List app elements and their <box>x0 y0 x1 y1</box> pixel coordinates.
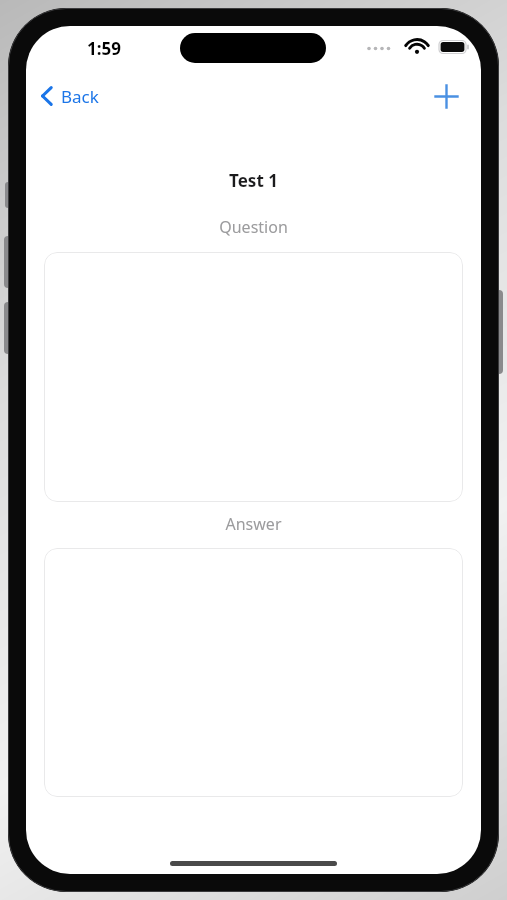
staticText: Question <box>26 216 481 238</box>
staticText: Back <box>61 85 99 108</box>
button[interactable]: Add <box>426 76 466 116</box>
button[interactable]: Back <box>40 78 99 114</box>
staticText: Answer <box>26 513 481 535</box>
staticText: Test 1 <box>26 169 481 192</box>
staticText: 1:59 <box>69 37 139 60</box>
